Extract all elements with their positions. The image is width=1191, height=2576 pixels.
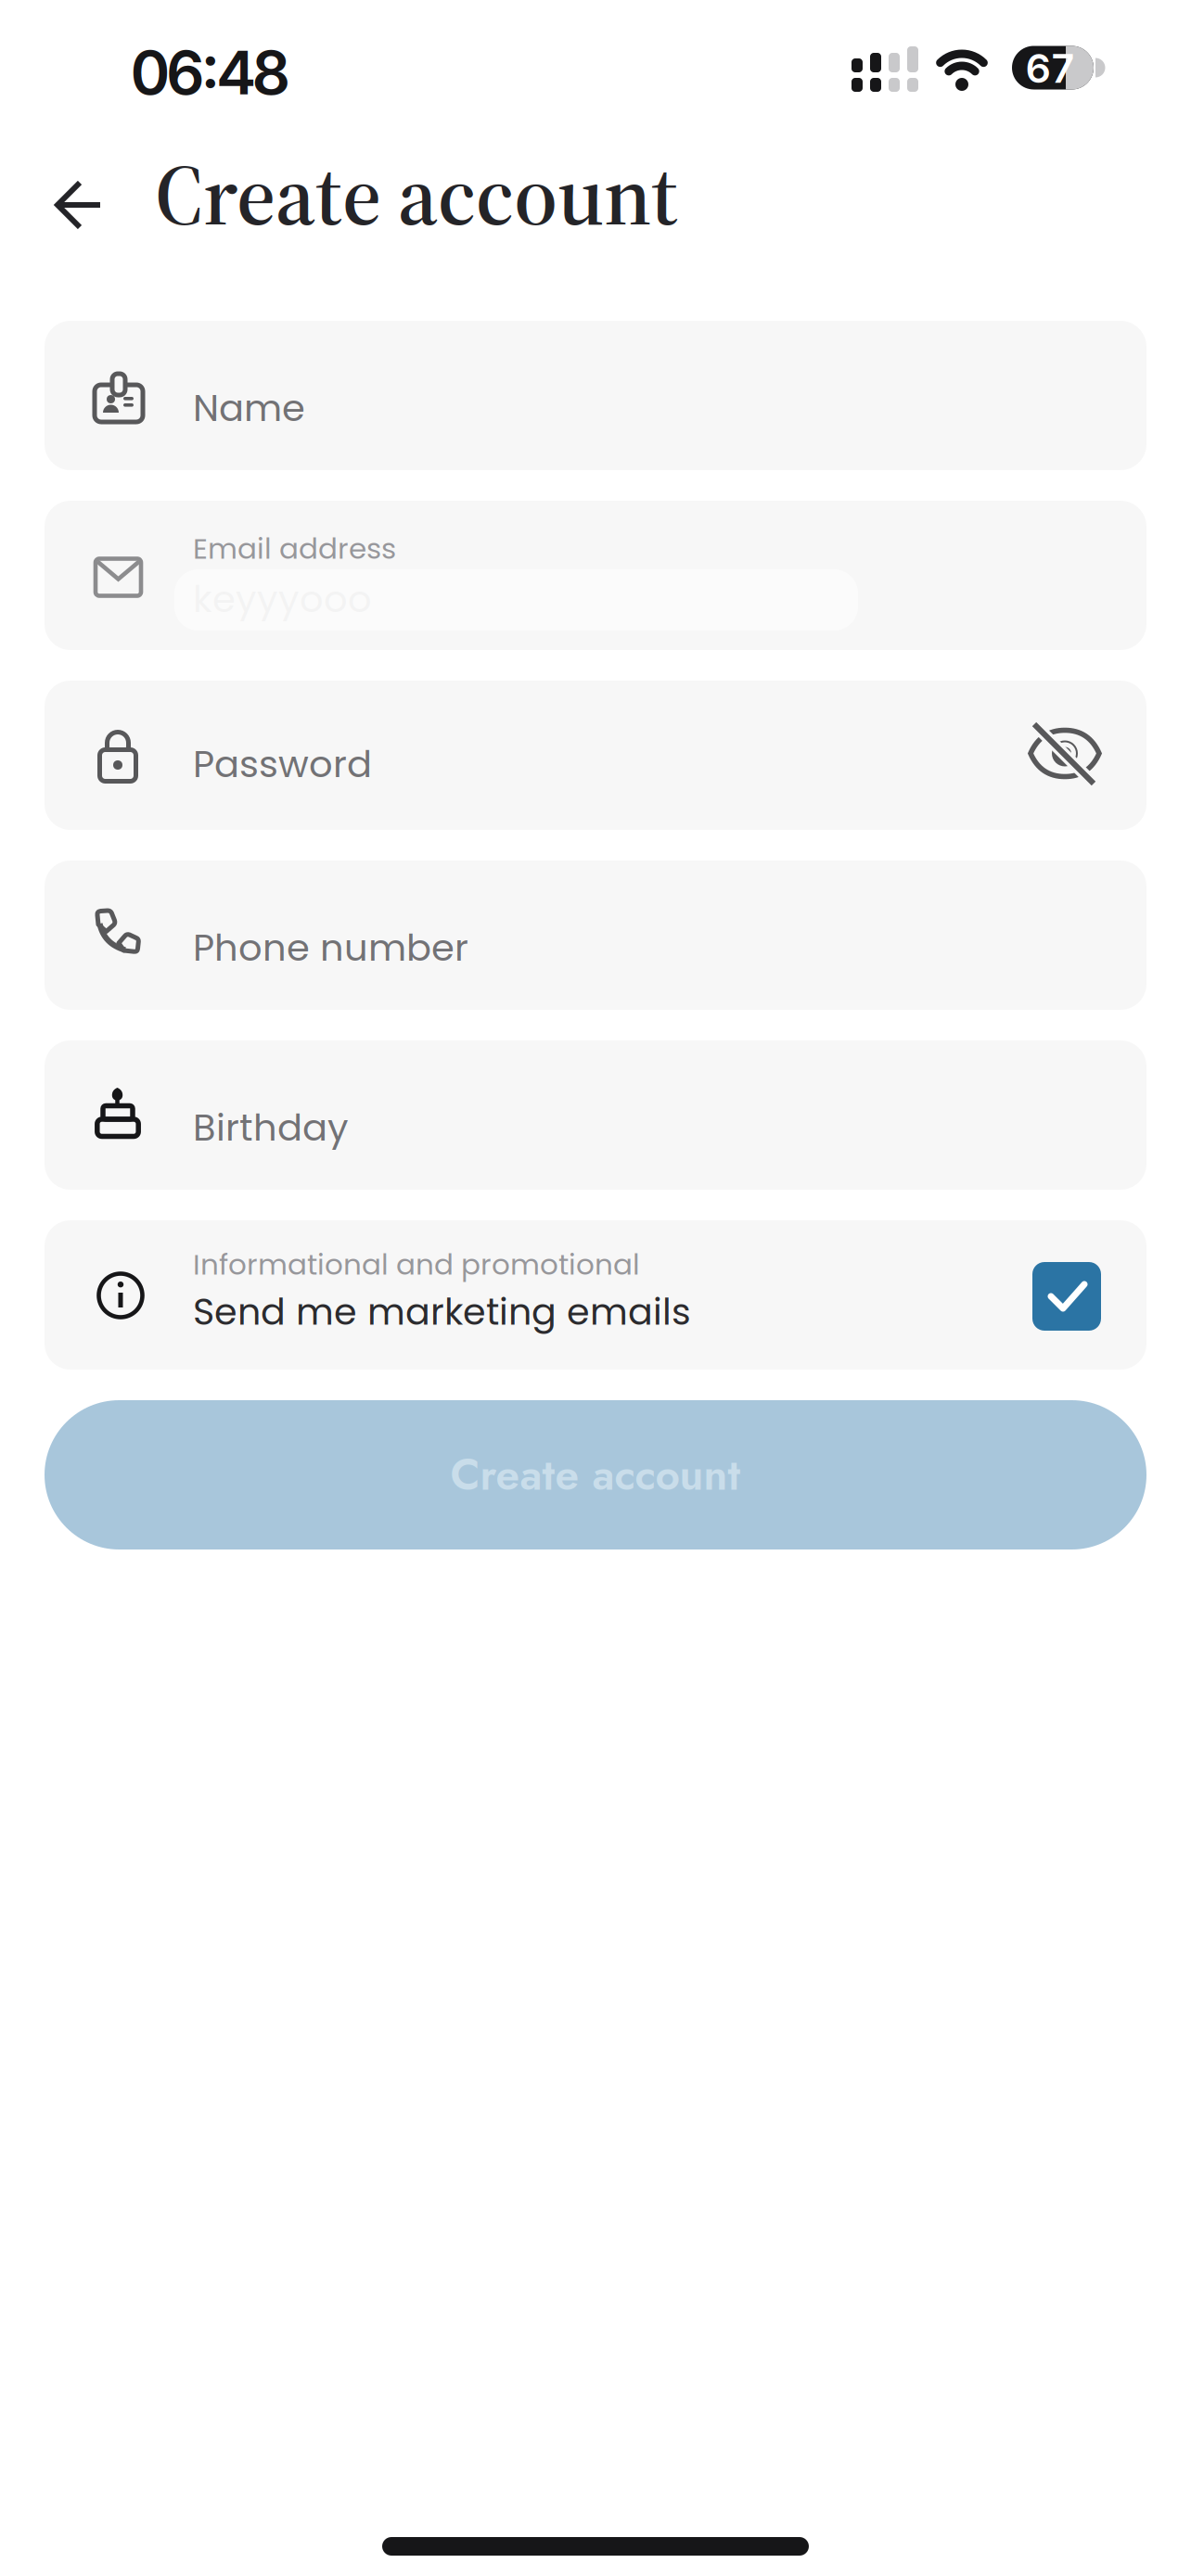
staticText: Email address — [193, 529, 396, 569]
staticText: Informational and promotional — [193, 1244, 640, 1285]
staticText: Send me marketing emails — [193, 1286, 691, 1338]
staticText: Birthday — [193, 1102, 349, 1154]
button[interactable]: Informational and promotional — [45, 1220, 1146, 1370]
button[interactable]: Phone number — [45, 861, 1146, 1010]
button[interactable]: Create account — [45, 1400, 1146, 1549]
button[interactable]: Birthday — [45, 1040, 1146, 1190]
staticText: Password — [193, 738, 372, 790]
staticText: 06:48 — [130, 36, 291, 109]
button[interactable]: Password — [45, 681, 1146, 830]
staticText: Create account — [155, 136, 678, 253]
staticText: Phone number — [193, 922, 468, 974]
button[interactable] — [1032, 1262, 1101, 1331]
button[interactable]: Name — [45, 321, 1146, 470]
button[interactable]: Email address — [45, 501, 1146, 650]
button[interactable] — [42, 168, 116, 242]
staticText: Name — [193, 382, 305, 434]
staticText: 67 — [1025, 44, 1075, 92]
button[interactable] — [1029, 719, 1101, 791]
staticText: Create account — [450, 1444, 741, 1506]
